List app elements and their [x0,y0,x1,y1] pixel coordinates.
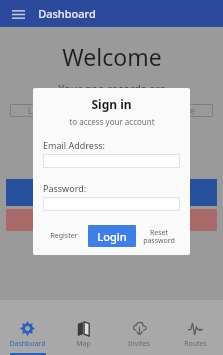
button[interactable]: Open navigation menu [8,4,28,24]
button[interactable]: Latitude [10,104,76,117]
staticText: Latitude [28,105,59,116]
button[interactable] [6,209,217,231]
button[interactable]: Subscribe to route [6,179,217,206]
button[interactable]: Reset password [138,225,180,247]
staticText: Invites [128,339,150,349]
button[interactable]: Dashboard [0,321,55,355]
staticText: Welcome [62,41,162,72]
staticText: Sign in [91,96,132,112]
staticText: to access your account [69,116,155,127]
button[interactable]: Register [43,225,85,247]
button[interactable]: Map [55,321,111,355]
staticText: Routes [184,339,207,349]
staticText: Email Address: [43,139,180,151]
button[interactable]: Routes [167,321,223,355]
staticText: Reset password [143,228,175,245]
button[interactable] [43,197,180,211]
staticText: Dashboard [9,339,46,349]
button[interactable]: Invites [111,321,167,355]
staticText: Password: [43,182,180,194]
button[interactable]: Login [88,225,136,247]
staticText: Map [76,339,91,349]
staticText: Register [50,231,78,241]
staticText: Dashboard [38,6,96,21]
staticText: Subscribe to route [64,185,159,200]
staticText: Login [97,229,127,244]
staticText: Your geo records are [58,81,166,96]
button[interactable]: Altitude [147,104,213,117]
button[interactable] [43,154,180,168]
staticText: Altitude [165,105,195,116]
